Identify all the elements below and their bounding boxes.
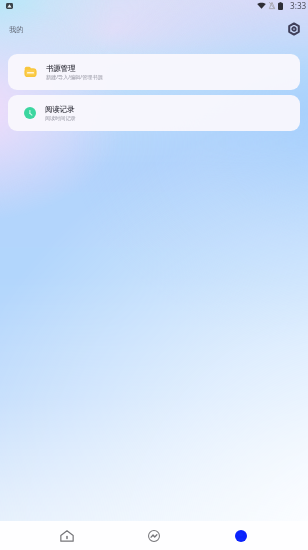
staticText: 3:33 (290, 0, 307, 11)
button[interactable]: 阅读记录 (8, 95, 300, 131)
staticText: 书源管理 (46, 64, 76, 73)
staticText: 阅读记录 (45, 105, 75, 114)
button[interactable]: 书源管理 (8, 54, 300, 90)
button[interactable]: Discover (110, 521, 197, 550)
staticText: 阅读时间记录 (45, 115, 76, 121)
staticText: 新建/导入/编辑/管理书源 (46, 74, 103, 81)
button[interactable]: Settings (285, 20, 303, 38)
staticText: 我的 (9, 25, 24, 34)
button[interactable]: Home (24, 521, 110, 550)
button[interactable]: Mine (197, 521, 284, 550)
